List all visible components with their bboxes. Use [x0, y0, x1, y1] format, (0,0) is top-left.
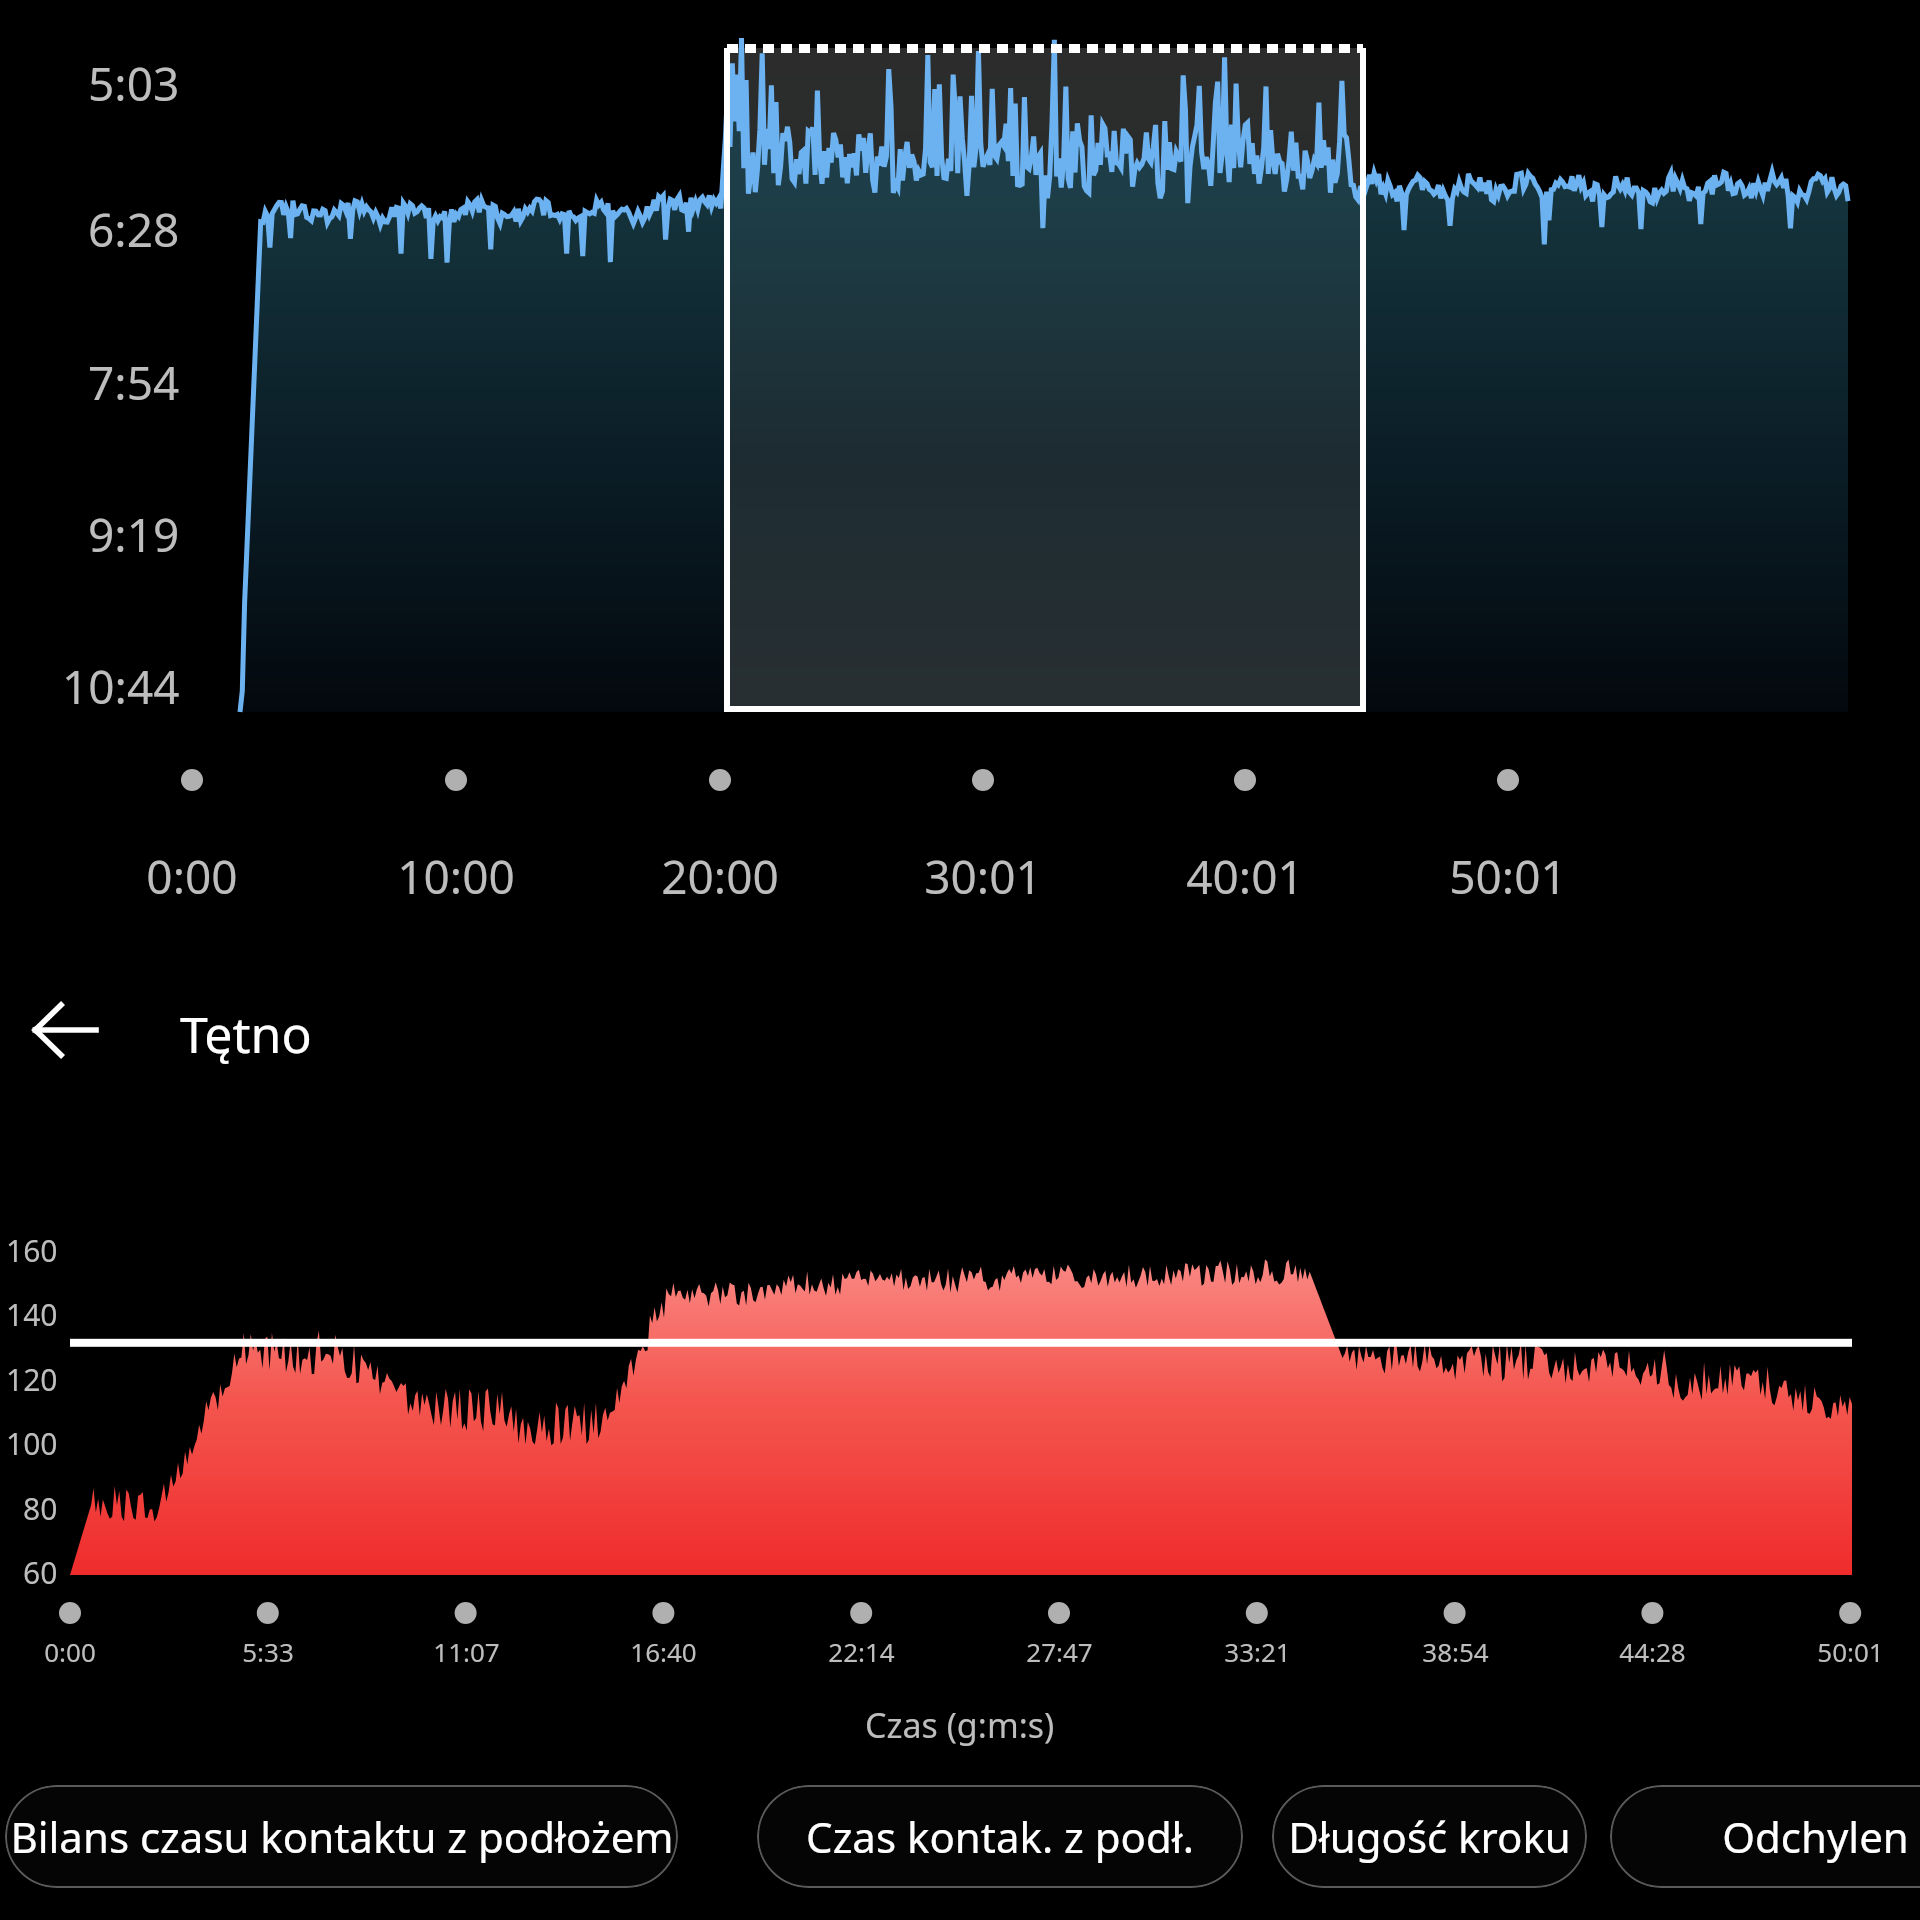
staticText: 5:33	[242, 1634, 294, 1669]
staticText: 60	[23, 1552, 58, 1593]
staticText: 16:40	[630, 1634, 697, 1669]
staticText: 9:19	[88, 503, 180, 566]
staticText: Długość kroku	[1288, 1808, 1571, 1865]
staticText: 11:07	[433, 1634, 500, 1669]
staticText: 6:28	[88, 198, 180, 261]
staticText: 120	[6, 1359, 58, 1400]
button[interactable]: Wstecz	[0, 975, 130, 1085]
staticText: 100	[6, 1423, 58, 1464]
staticText: 30:01	[924, 845, 1042, 908]
staticText: 50:01	[1449, 845, 1567, 908]
staticText: 33:21	[1224, 1634, 1291, 1669]
staticText: Tętno	[180, 1000, 312, 1068]
staticText: 80	[23, 1488, 58, 1529]
staticText: 22:14	[828, 1634, 895, 1669]
staticText: Bilans czasu kontaktu z podłożem	[10, 1808, 674, 1865]
staticText: Czas (g:m:s)	[865, 1702, 1055, 1748]
staticText: 0:00	[146, 845, 238, 908]
button[interactable]: Długość kroku	[1272, 1785, 1587, 1888]
staticText: 140	[6, 1294, 58, 1335]
staticText: 7:54	[88, 351, 180, 414]
button[interactable]: Odchylen	[1610, 1785, 1920, 1888]
staticText: 50:01	[1817, 1634, 1884, 1669]
staticText: 44:28	[1619, 1634, 1686, 1669]
staticText: Czas kontak. z podł.	[806, 1808, 1194, 1865]
staticText: 20:00	[661, 845, 779, 908]
staticText: Odchylen	[1722, 1808, 1909, 1865]
staticText: 27:47	[1026, 1634, 1093, 1669]
button[interactable]: Bilans czasu kontaktu z podłożem	[5, 1785, 678, 1888]
staticText: 38:54	[1422, 1634, 1489, 1669]
staticText: 160	[6, 1230, 58, 1271]
staticText: 5:03	[88, 52, 180, 115]
staticText: 10:44	[62, 655, 180, 718]
button[interactable]: Czas kontak. z podł.	[757, 1785, 1243, 1888]
staticText: 40:01	[1186, 845, 1304, 908]
staticText: 10:00	[397, 845, 515, 908]
staticText: 0:00	[44, 1634, 96, 1669]
